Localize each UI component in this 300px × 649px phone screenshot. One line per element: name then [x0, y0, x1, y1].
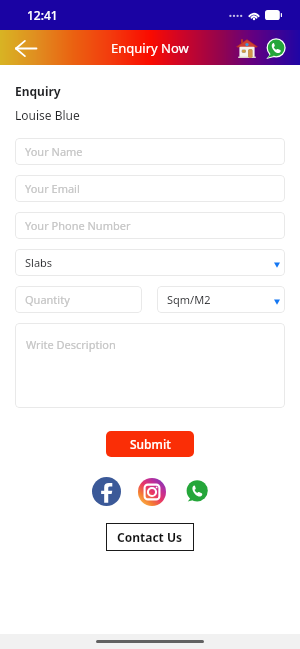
staticText: Slabs: [25, 255, 53, 270]
button[interactable]: Back: [11, 33, 41, 63]
button[interactable]: Submit: [106, 431, 194, 457]
button[interactable]: Your Email: [15, 175, 285, 202]
staticText: 12:41: [27, 7, 58, 23]
staticText: Your Name: [25, 144, 83, 159]
button[interactable]: WhatsApp: [265, 38, 286, 59]
staticText: Sqm/M2: [167, 292, 211, 307]
button[interactable]: Home: [236, 37, 258, 59]
staticText: Submit: [130, 436, 171, 452]
button[interactable]: Your Name: [15, 138, 285, 165]
staticText: Louise Blue: [15, 107, 80, 123]
button[interactable]: Your Phone Number: [15, 212, 285, 239]
staticText: Enquiry: [15, 83, 61, 99]
button[interactable]: Contact Us: [106, 523, 194, 551]
button[interactable]: Slabs: [15, 249, 285, 276]
staticText: Enquiry Now: [111, 39, 189, 57]
staticText: Quantity: [25, 292, 70, 307]
button[interactable]: Facebook: [92, 477, 121, 506]
button[interactable]: Sqm/M2: [157, 286, 285, 313]
button[interactable]: Instagram: [138, 478, 166, 506]
staticText: Contact Us: [117, 529, 183, 545]
staticText: Your Email: [25, 181, 80, 196]
button[interactable]: WhatsApp: [185, 480, 208, 503]
staticText: Your Phone Number: [25, 218, 131, 233]
button[interactable]: Quantity: [15, 286, 142, 313]
staticText: Write Description: [26, 337, 116, 352]
button[interactable]: Write Description: [15, 323, 285, 408]
